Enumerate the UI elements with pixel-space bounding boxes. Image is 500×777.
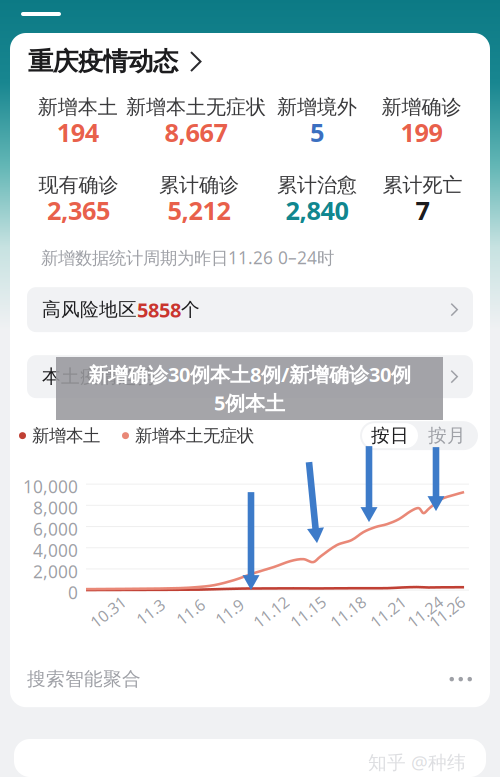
staticText: 199 [400,115,442,149]
staticText: 按月 [428,424,466,447]
staticText: 7 [415,193,429,227]
staticText: 11.15 [288,601,328,622]
staticText: 11.6 [175,601,206,622]
staticText: 新增境外 [277,95,357,119]
staticText: 4,000 [33,539,78,562]
staticText: 11.18 [328,601,368,622]
staticText: 11.26 [427,601,467,622]
staticText: 按日 [371,424,409,447]
staticText: 194 [57,115,99,149]
staticText: 2,365 [47,193,110,227]
staticText: 新增确诊 [381,95,461,119]
staticText: 10.31 [88,601,128,622]
staticText: 新增确诊30例本土8例/新增确诊30例 [88,361,411,387]
staticText: 2,000 [33,560,78,583]
staticText: 新增本土 [32,425,100,446]
staticText: 新增本土无症状 [135,425,254,446]
staticText: 5例本土 [214,389,285,416]
staticText: 累计治愈 [277,173,357,197]
staticText: 新增本土无症状 [126,95,266,119]
staticText: 搜索智能聚合 [27,668,141,691]
staticText: 5 [310,115,324,149]
staticText: 累计确诊 [159,173,239,197]
staticText: 11.3 [135,601,166,622]
button[interactable]: 重庆疫情动态 [10,33,490,96]
staticText: 重庆疫情动态 [28,46,178,77]
staticText: 新增本土 [38,95,118,119]
staticText: 6,000 [33,517,78,540]
staticText: 11.21 [368,601,408,622]
staticText: 个 [181,298,200,321]
button[interactable]: 搜索智能聚合 [10,651,490,707]
staticText: 新增数据统计周期为昨日11.26 0–24时 [41,246,334,269]
staticText: 5858 [137,296,181,323]
staticText: 5,212 [167,193,230,227]
staticText: 11.24 [405,601,445,622]
button[interactable]: 本土疫情趋势 [10,332,490,398]
staticText: 11.9 [214,601,245,622]
button[interactable]: 高风险地区 [10,269,490,332]
staticText: 本土疫情趋势 [42,365,156,388]
staticText: 高风险地区 [42,298,137,321]
staticText: 11.12 [251,601,291,622]
staticText: 知乎 @种纬 [368,750,466,774]
staticText: 现有确诊 [39,173,119,197]
staticText: 8,667 [164,115,227,149]
staticText: 10,000 [23,475,78,498]
staticText: 0 [68,581,78,604]
staticText: 累计死亡 [382,173,462,197]
button[interactable]: 按月 [418,423,476,448]
staticText: 2,840 [285,193,348,227]
staticText: 8,000 [33,496,78,519]
button[interactable]: 按日 [362,423,418,448]
